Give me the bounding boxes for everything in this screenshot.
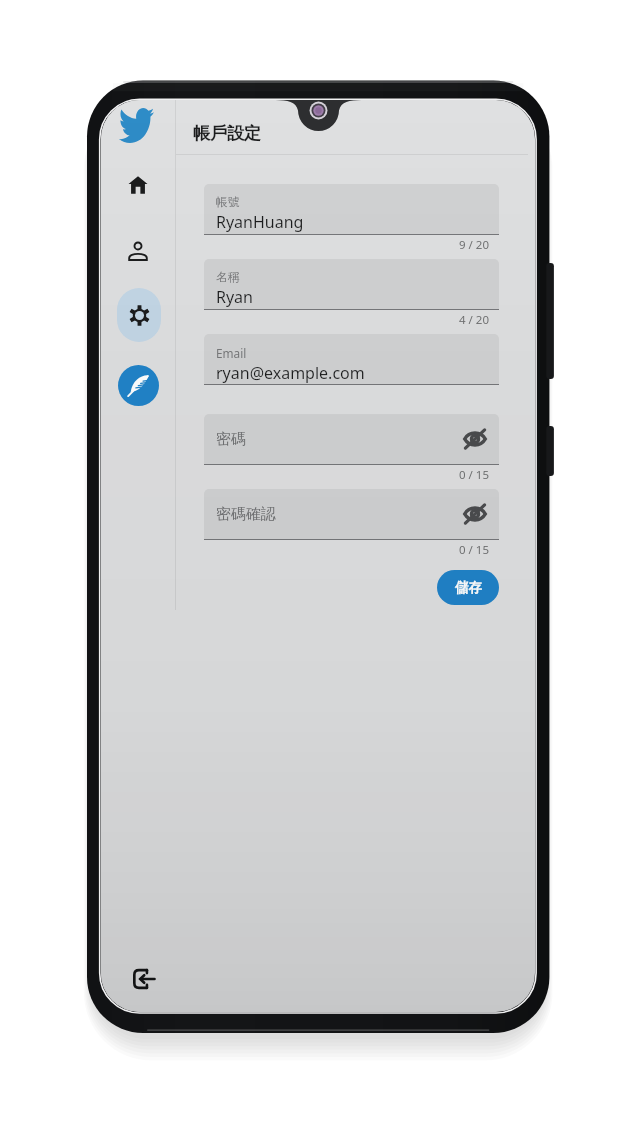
button[interactable]: 密碼 [204, 414, 499, 464]
button[interactable]: Settings [117, 288, 161, 342]
button[interactable]: Profile [116, 229, 160, 273]
staticText: Email [216, 345, 247, 361]
staticText: RyanHuang [216, 211, 304, 233]
button[interactable]: 帳號 [204, 184, 499, 234]
staticText: 0 / 15 [459, 467, 489, 483]
button[interactable]: Email [204, 334, 499, 384]
button[interactable]: Toggle password visibility [462, 501, 488, 527]
staticText: 9 / 20 [459, 237, 489, 253]
staticText: 名稱 [216, 270, 240, 285]
button[interactable]: 儲存 [437, 570, 499, 605]
button[interactable]: 密碼確認 [204, 489, 499, 539]
staticText: ryan@example.com [216, 362, 365, 384]
staticText: 帳戶設定 [193, 123, 261, 144]
button[interactable]: Toggle password visibility [462, 426, 488, 452]
staticText: 密碼 [216, 430, 246, 449]
button[interactable]: Compose Tweet [118, 365, 159, 406]
button[interactable]: Home [116, 163, 160, 207]
button[interactable]: 名稱 [204, 259, 499, 309]
button[interactable]: Log out [124, 959, 164, 999]
staticText: Ryan [216, 286, 253, 308]
button[interactable]: Twitter [118, 107, 154, 143]
staticText: 儲存 [455, 579, 482, 596]
staticText: 0 / 15 [459, 542, 489, 558]
staticText: 密碼確認 [216, 505, 276, 524]
staticText: 帳號 [216, 195, 240, 210]
staticText: 4 / 20 [459, 312, 489, 328]
